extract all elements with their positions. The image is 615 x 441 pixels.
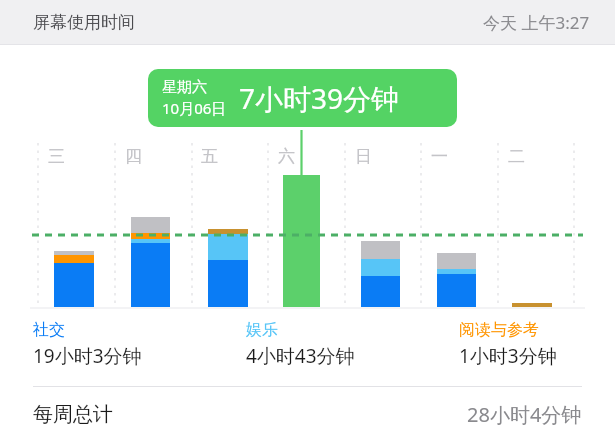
button[interactable]: 娱乐 (246, 320, 355, 369)
staticText: 阅读与参考 (459, 320, 539, 340)
button[interactable]: 社交 (33, 320, 142, 369)
staticText: 五 (201, 146, 218, 167)
staticText: 4小时43分钟 (246, 343, 355, 369)
staticText: 28小时4分钟 (467, 401, 582, 428)
staticText: 每周总计 (33, 402, 113, 427)
staticText: 星期六 (162, 78, 207, 97)
staticText: 三 (48, 146, 65, 167)
staticText: 一 (431, 146, 448, 167)
staticText: 今天 上午3:27 (483, 11, 590, 34)
staticText: 10月06日 (162, 98, 227, 118)
staticText: 四 (125, 146, 142, 167)
staticText: 娱乐 (246, 320, 278, 340)
button[interactable]: 屏幕使用时间 (0, 0, 615, 44)
button[interactable]: 阅读与参考 (459, 320, 557, 369)
staticText: 六 (278, 146, 295, 167)
staticText: 19小时3分钟 (33, 343, 142, 369)
button[interactable]: 星期六 (148, 69, 457, 127)
staticText: 7小时39分钟 (239, 79, 400, 117)
button[interactable]: 每周总计 (0, 387, 615, 441)
staticText: 屏幕使用时间 (33, 12, 135, 33)
staticText: 1小时3分钟 (459, 343, 557, 369)
staticText: 社交 (33, 320, 65, 340)
staticText: 日 (355, 146, 372, 167)
staticText: 二 (508, 146, 525, 167)
